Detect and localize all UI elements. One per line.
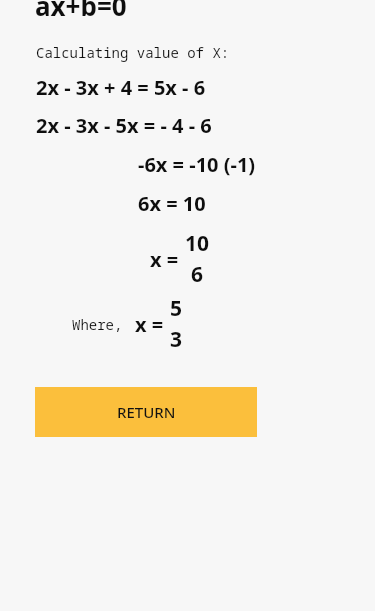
button[interactable]: RETURN	[35, 387, 257, 437]
staticText: ax+b=0	[35, 0, 127, 23]
staticText: RETURN	[117, 402, 176, 422]
staticText: 5	[170, 294, 183, 323]
staticText: 6x = 10	[138, 190, 206, 217]
staticText: 6	[191, 260, 204, 289]
staticText: 10	[185, 229, 210, 258]
staticText: Calculating value of X:	[36, 43, 230, 62]
staticText: -6x = -10 (-1)	[138, 151, 256, 178]
staticText: 3	[170, 325, 183, 354]
staticText: 2x - 3x - 5x = - 4 - 6	[36, 112, 212, 139]
staticText: 2x - 3x + 4 = 5x - 6	[36, 74, 206, 101]
staticText: x =	[135, 311, 164, 338]
staticText: Where,	[72, 315, 123, 334]
staticText: x =	[150, 246, 179, 273]
